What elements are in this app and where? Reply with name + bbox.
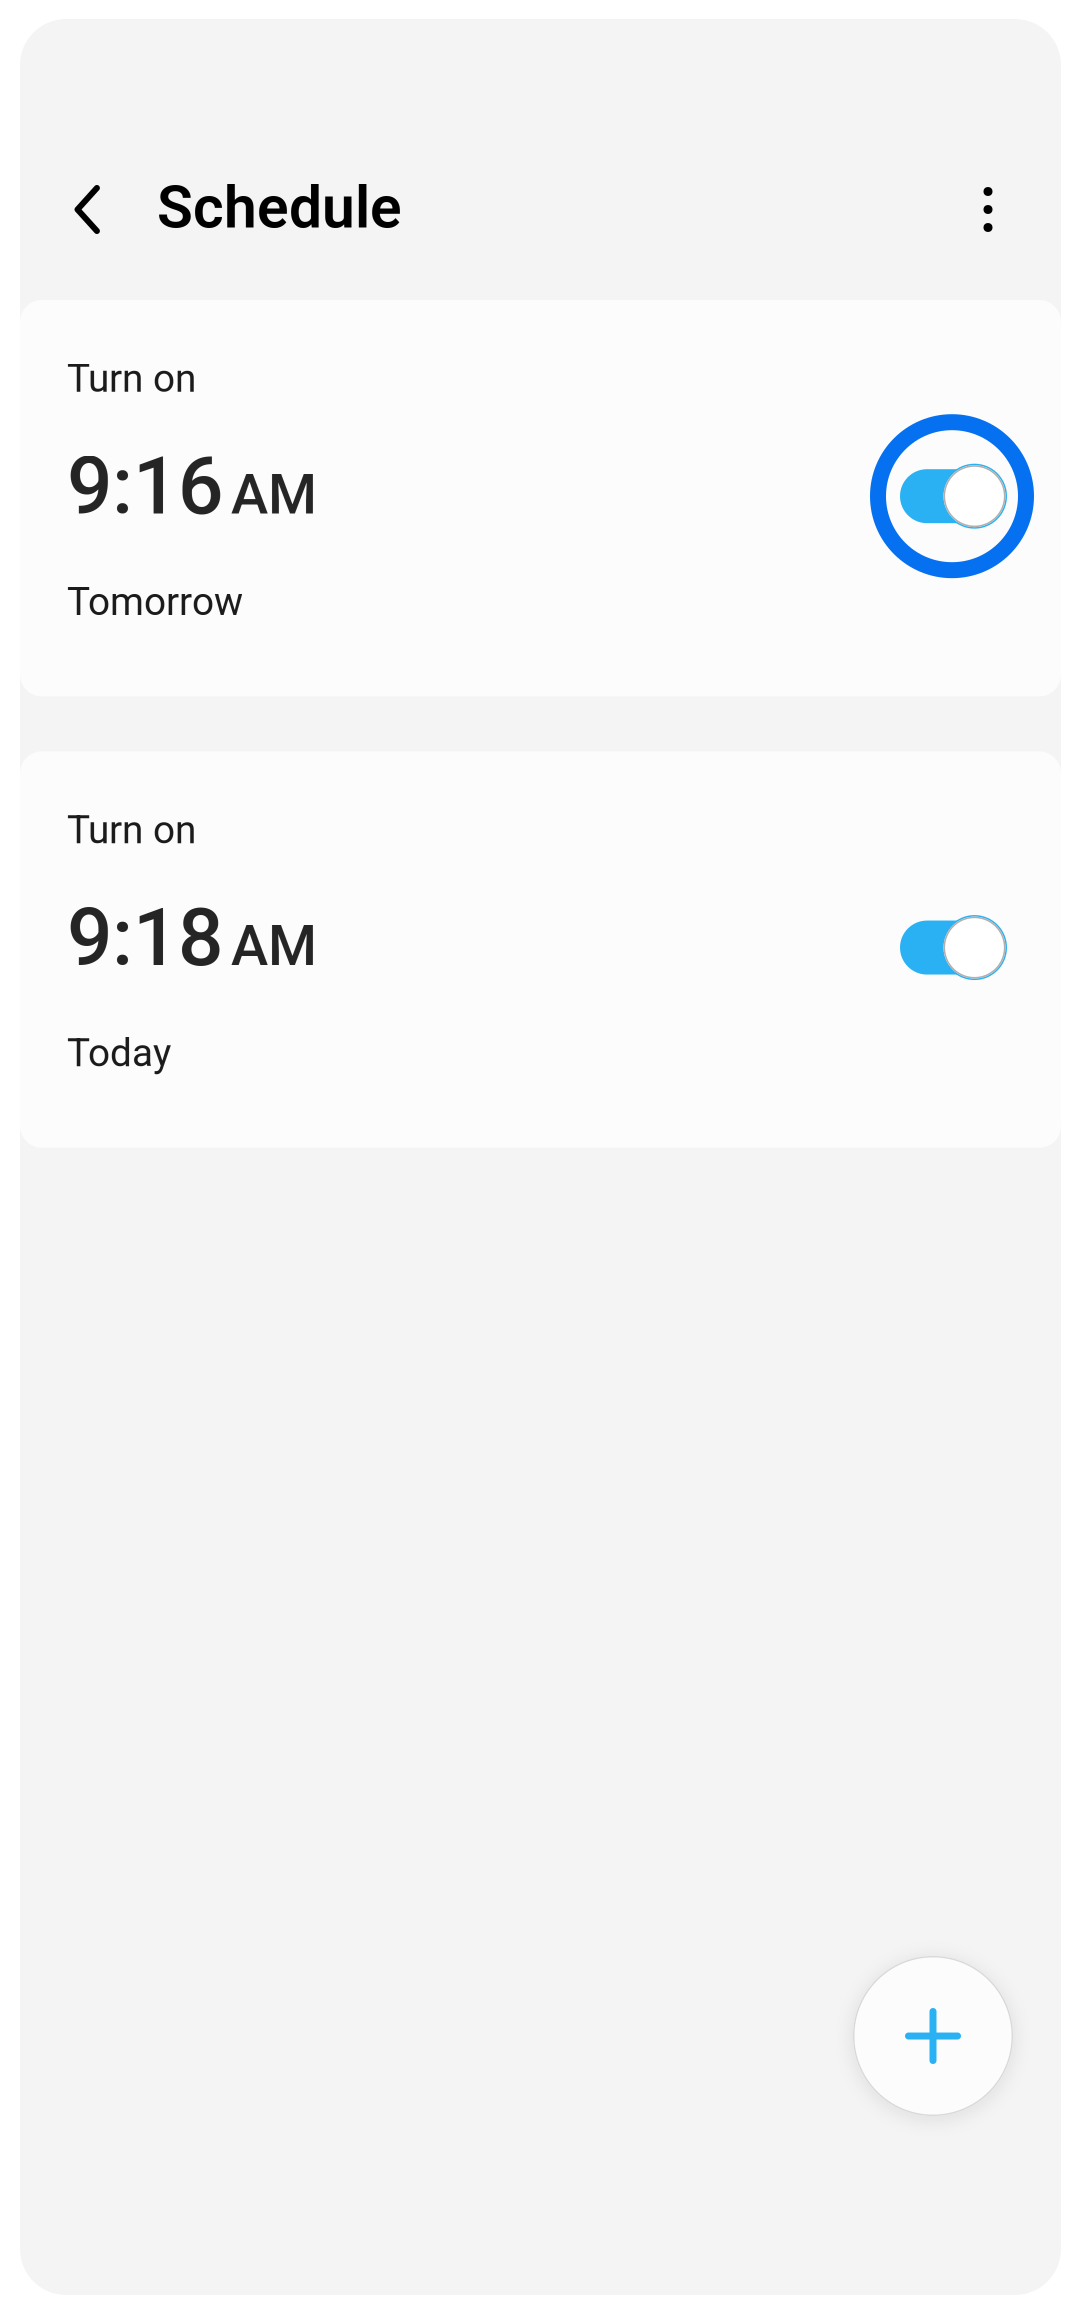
- staticText: Turn on: [67, 356, 196, 401]
- button[interactable]: Alarm 9:18 AM, on: [870, 866, 1034, 1030]
- button[interactable]: Turn on: [20, 751, 1061, 1148]
- button[interactable]: More options: [958, 154, 1018, 264]
- staticText: 9:16: [67, 439, 223, 533]
- staticText: AM: [231, 462, 317, 527]
- staticText: Tomorrow: [67, 579, 243, 624]
- staticText: Schedule: [157, 173, 402, 242]
- button[interactable]: Turn on: [20, 300, 1061, 696]
- staticText: Today: [67, 1030, 171, 1076]
- button[interactable]: Add alarm: [853, 1956, 1013, 2116]
- button[interactable]: Alarm 9:16 AM, on: [870, 414, 1034, 578]
- button[interactable]: Back: [62, 154, 112, 264]
- staticText: AM: [231, 913, 317, 979]
- staticText: 9:18: [67, 891, 223, 984]
- staticText: Turn on: [67, 807, 196, 853]
